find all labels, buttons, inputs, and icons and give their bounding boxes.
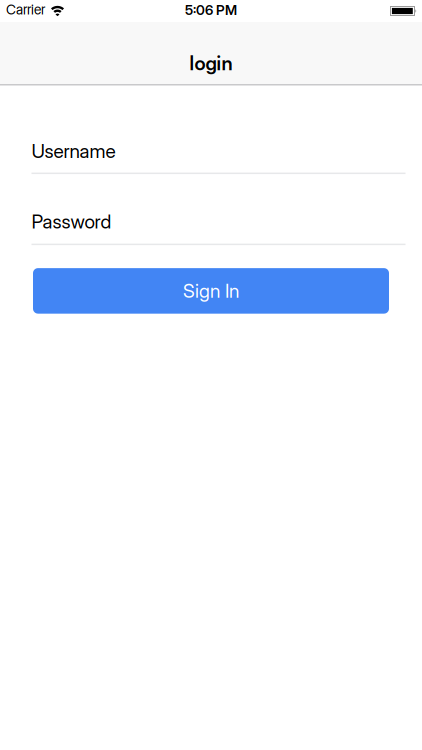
button[interactable]: Sign In bbox=[33, 268, 389, 314]
button[interactable]: Password bbox=[31, 210, 405, 245]
button[interactable]: Username bbox=[31, 139, 405, 174]
staticText: 5:06 PM bbox=[185, 2, 237, 18]
staticText: Sign In bbox=[183, 279, 239, 302]
staticText: Carrier bbox=[6, 1, 45, 18]
staticText: Password bbox=[31, 210, 111, 233]
staticText: login bbox=[189, 51, 232, 75]
staticText: Username bbox=[31, 139, 115, 163]
